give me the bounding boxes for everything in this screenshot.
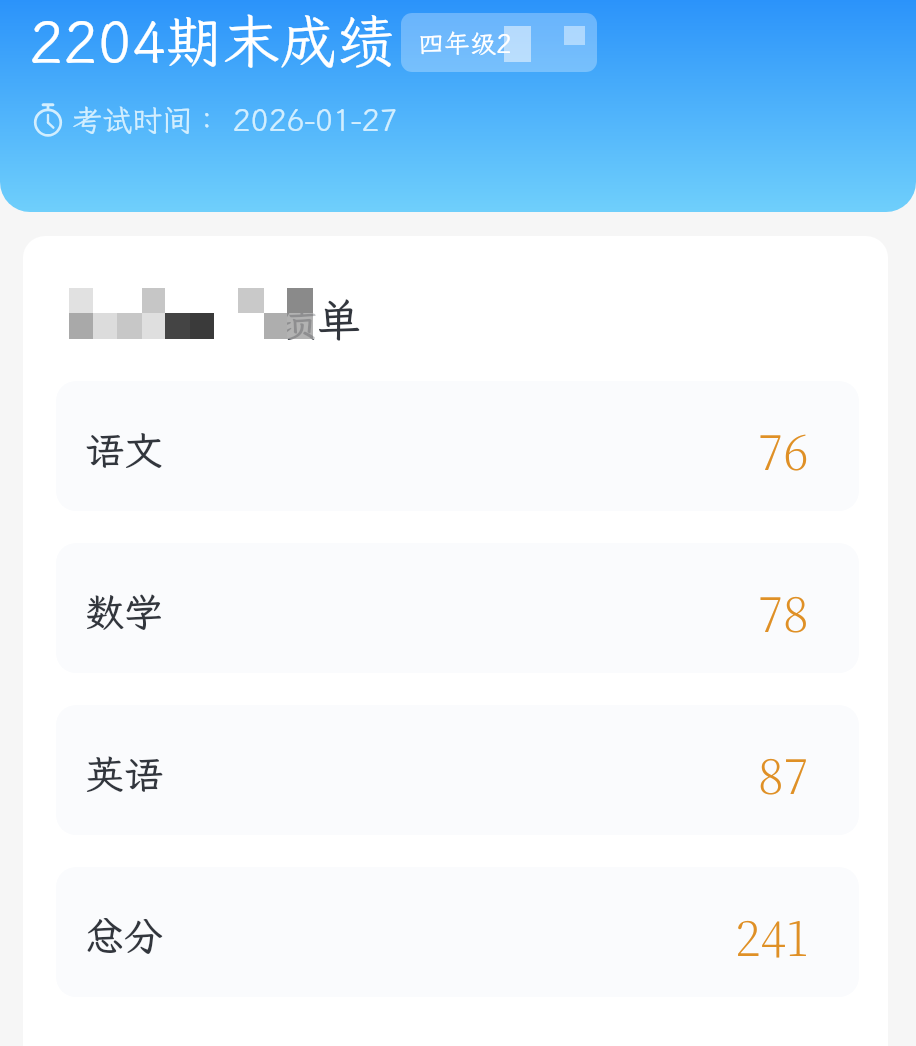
staticText: 数学 [85,586,164,637]
button[interactable]: 语文 [56,381,859,511]
button[interactable]: 四年级2 [401,13,597,72]
other: Exam time [30,101,66,137]
staticText: 绩单 [273,291,361,349]
staticText: 考试时间： 2026-01-27 [72,100,398,140]
button[interactable]: 英语 [56,705,859,835]
staticText: 241 [735,902,809,970]
staticText: 2204期末成绩 [29,3,394,78]
staticText: 76 [758,416,809,484]
staticText: 78 [758,578,809,646]
staticText: 语文 [85,424,164,475]
button[interactable]: 数学 [56,543,859,673]
staticText: 87 [758,740,809,808]
button[interactable]: 总分 [56,867,859,997]
staticText: 英语 [85,748,164,799]
staticText: 总分 [85,910,164,961]
staticText: 四年级2 [418,26,512,60]
